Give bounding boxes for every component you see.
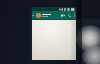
button[interactable]: Video call (60, 11, 66, 19)
button[interactable] (36, 11, 60, 19)
button[interactable]: More options (72, 11, 76, 19)
button[interactable]: Back (31, 11, 36, 19)
button[interactable]: Call (66, 11, 72, 19)
